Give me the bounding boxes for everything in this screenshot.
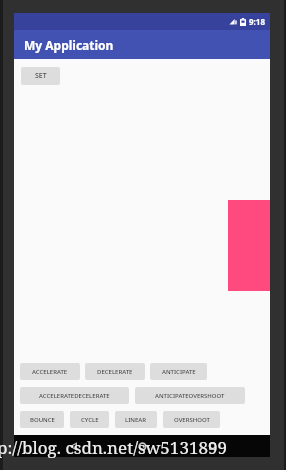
button[interactable]: SET [21,67,60,85]
button[interactable]: ACCELERATE [20,363,80,380]
staticText: My Application [24,37,114,53]
button[interactable]: CYCLE [70,411,109,428]
staticText: ACCELERATEDECELERATE [39,392,110,400]
staticText: SET [35,71,47,81]
button[interactable]: ACCELERATEDECELERATE [20,387,129,404]
button[interactable]: Recent apps [201,435,223,457]
button[interactable]: LINEAR [115,411,157,428]
button[interactable]: DECELERATE [85,363,145,380]
button[interactable]: ANTICIPATE [150,363,207,380]
staticText: DECELERATE [97,368,133,376]
staticText: ANTICIPATE [162,368,196,376]
staticText: BOUNCE [30,416,55,424]
button[interactable]: OVERSHOOT [163,411,220,428]
button[interactable]: Back [62,435,84,457]
staticText: OVERSHOOT [174,416,210,424]
staticText: ANTICIPATEOVERSHOOT [155,392,225,400]
staticText: ACCELERATE [32,368,68,376]
staticText: LINEAR [125,416,147,424]
staticText: p://blog. csdn.net/sw5131899 [0,436,227,459]
button[interactable]: BOUNCE [20,411,64,428]
button[interactable]: Home [131,435,153,457]
staticText: 9:18 [249,16,265,27]
button[interactable]: ANTICIPATEOVERSHOOT [135,387,245,404]
staticText: CYCLE [81,416,99,424]
